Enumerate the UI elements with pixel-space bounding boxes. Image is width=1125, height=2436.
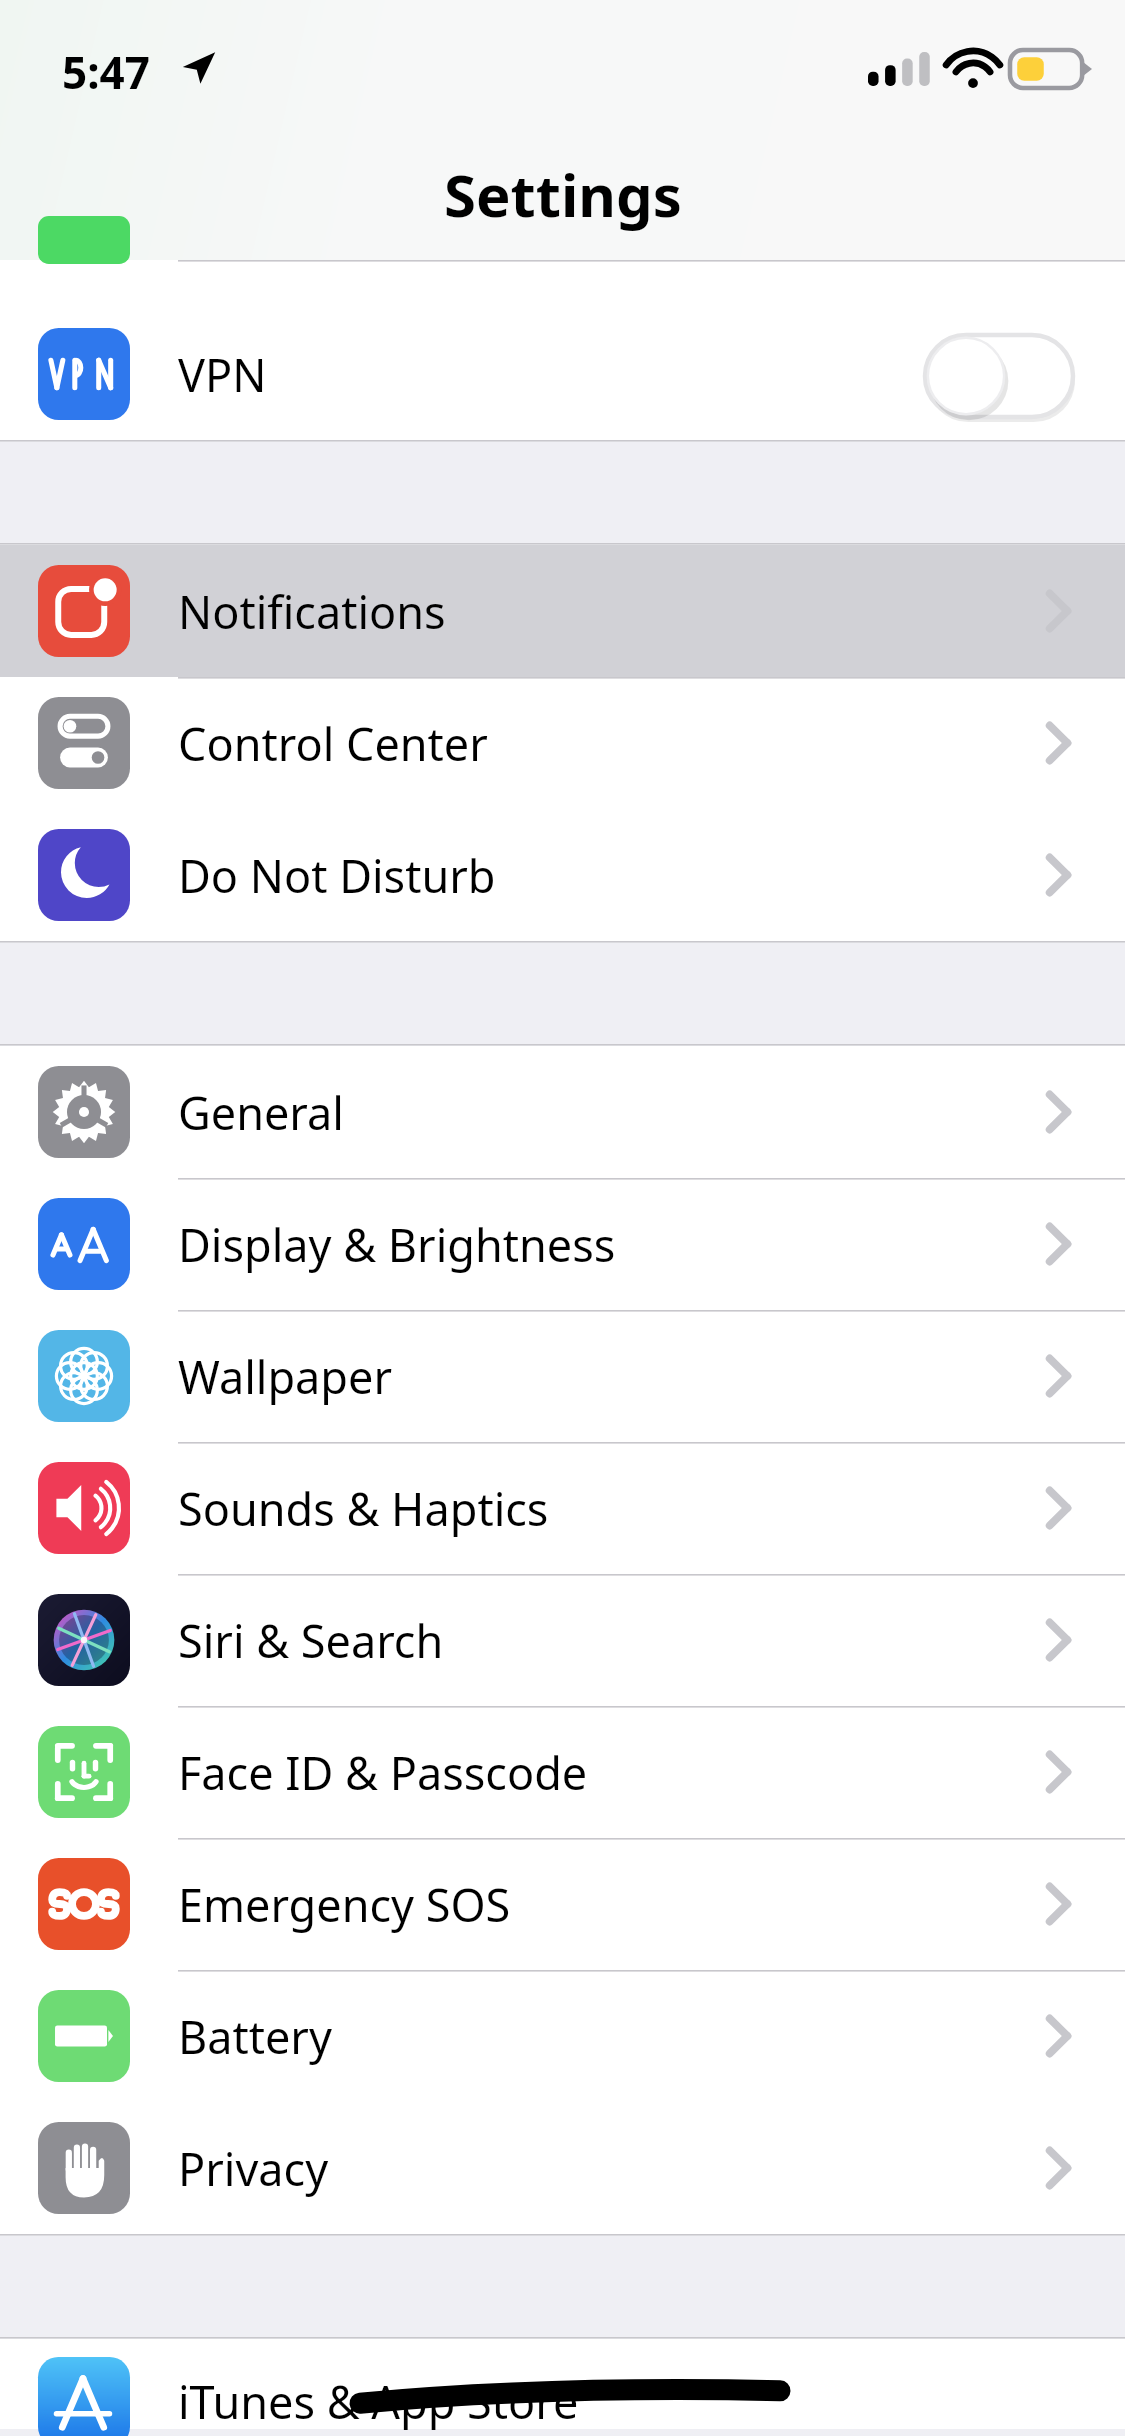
button[interactable]: Notifications — [0, 545, 1125, 677]
button[interactable]: Control Center — [0, 677, 1125, 809]
staticText: Settings — [444, 155, 682, 234]
button[interactable]: Battery — [0, 1970, 1125, 2102]
staticText: Sounds & Haptics — [178, 1478, 549, 1539]
button[interactable]: General — [0, 1046, 1125, 1178]
staticText: 5:47 — [62, 42, 150, 102]
staticText: Siri & Search — [178, 1610, 444, 1671]
button[interactable]: Siri & Search — [0, 1574, 1125, 1706]
staticText: Battery — [178, 2006, 332, 2067]
button[interactable]: Display & Brightness — [0, 1178, 1125, 1310]
staticText: Control Center — [178, 713, 488, 774]
button[interactable]: Privacy — [0, 2102, 1125, 2234]
button[interactable]: Sounds & Haptics — [0, 1442, 1125, 1574]
staticText: General — [178, 1082, 344, 1143]
staticText: Wallpaper — [178, 1346, 392, 1407]
staticText: Emergency SOS — [178, 1874, 511, 1935]
staticText: Privacy — [178, 2138, 329, 2199]
button[interactable]: Emergency SOS — [0, 1838, 1125, 1970]
staticText: Display & Brightness — [178, 1214, 616, 1275]
button[interactable]: Face ID & Passcode — [0, 1706, 1125, 1838]
staticText: Do Not Disturb — [178, 845, 496, 906]
button[interactable]: VPN — [0, 308, 1125, 440]
staticText: iTunes & App Store — [178, 2371, 579, 2432]
button[interactable] — [0, 260, 1125, 308]
staticText: VPN — [178, 344, 267, 405]
staticText: Notifications — [178, 581, 446, 642]
button[interactable]: Do Not Disturb — [0, 809, 1125, 941]
button[interactable]: Wallpaper — [0, 1310, 1125, 1442]
staticText: Face ID & Passcode — [178, 1742, 588, 1803]
button[interactable]: iTunes & App Store — [0, 2339, 1125, 2429]
